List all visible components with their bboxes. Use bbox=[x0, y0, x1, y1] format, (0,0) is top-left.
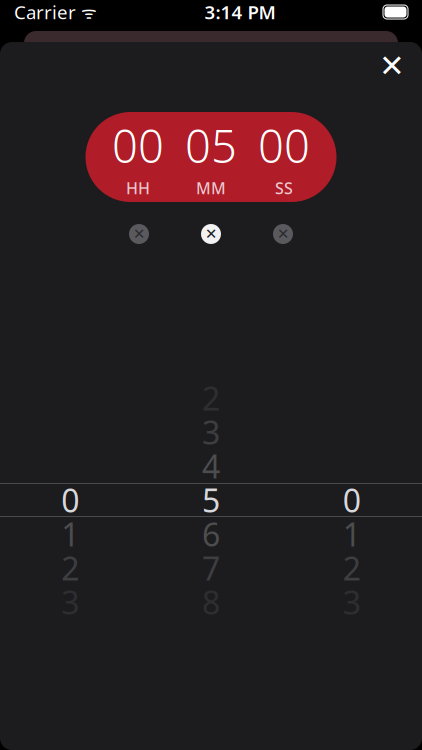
staticText: ✕ bbox=[205, 226, 217, 242]
staticText: 3 bbox=[61, 581, 79, 623]
staticText: 6 bbox=[202, 513, 220, 555]
staticText: ᯤ bbox=[76, 0, 97, 23]
staticText: SS bbox=[275, 177, 293, 199]
staticText: 8 bbox=[202, 581, 220, 623]
staticText: 3 bbox=[343, 581, 361, 623]
staticText: 00 bbox=[112, 115, 164, 175]
staticText: 1 bbox=[61, 513, 79, 555]
staticText: 4 bbox=[202, 445, 220, 487]
staticText: 2 bbox=[343, 547, 361, 589]
staticText: 0 bbox=[61, 479, 79, 521]
staticText: 7 bbox=[202, 547, 220, 589]
staticText: 3 bbox=[202, 411, 220, 453]
staticText: 2 bbox=[61, 547, 79, 589]
button[interactable]: Close bbox=[370, 44, 414, 88]
staticText: 00 bbox=[258, 115, 310, 175]
staticText: ✕ bbox=[277, 226, 289, 242]
staticText: 5 bbox=[202, 479, 220, 521]
staticText: 3:14 PM bbox=[204, 0, 275, 24]
staticText: Carrier bbox=[14, 0, 76, 24]
staticText: 0 bbox=[343, 479, 361, 521]
button[interactable]: Clear hours bbox=[122, 217, 156, 251]
staticText: 2 bbox=[202, 377, 220, 419]
staticText: MM bbox=[196, 177, 226, 199]
staticText: HH bbox=[126, 177, 150, 199]
staticText: ✕ bbox=[379, 49, 405, 83]
staticText: 1 bbox=[343, 513, 361, 555]
staticText: 05 bbox=[185, 115, 237, 175]
staticText: ✕ bbox=[133, 226, 145, 242]
button[interactable]: Clear minutes bbox=[194, 217, 228, 251]
button[interactable]: Clear seconds bbox=[266, 217, 300, 251]
